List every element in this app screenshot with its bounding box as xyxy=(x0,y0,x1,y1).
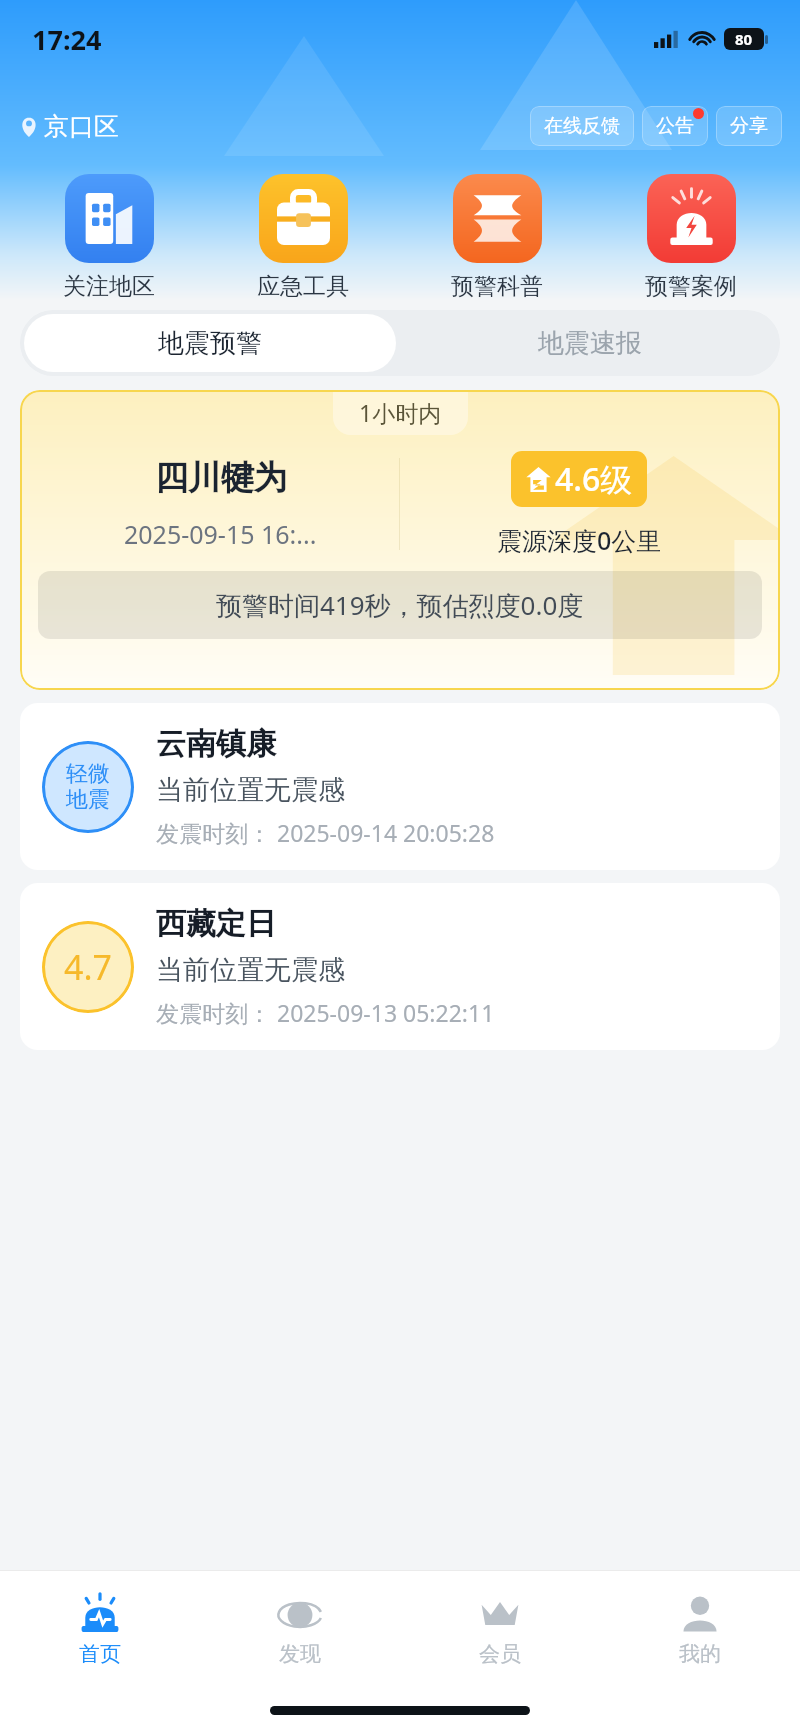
staticText: 应急工具 xyxy=(257,272,349,298)
staticText: 发震时刻： 2025-09-14 20:05:28 xyxy=(156,817,495,848)
staticText: 震源深度0公里 xyxy=(497,523,662,557)
button[interactable]: 在线反馈 xyxy=(530,106,634,146)
button[interactable]: 地震预警 xyxy=(24,314,396,372)
button[interactable]: 1小时内 xyxy=(20,390,780,690)
staticText: 80 xyxy=(735,29,753,49)
staticText: 四川犍为 xyxy=(155,457,287,499)
staticText: 当前位置无震感 xyxy=(156,773,345,807)
button[interactable]: 轻微 地震 xyxy=(20,703,780,870)
staticText: 会员 xyxy=(479,1641,521,1667)
button[interactable]: 发现 xyxy=(200,1571,400,1687)
staticText: 云南镇康 xyxy=(156,725,276,763)
button[interactable]: 京口区 xyxy=(18,107,119,146)
staticText: 预警案例 xyxy=(645,272,737,298)
button[interactable]: 公告 xyxy=(642,106,708,146)
staticText: 预警时间419秒，预估烈度0.0度 xyxy=(216,587,584,623)
staticText: 京口区 xyxy=(44,111,119,142)
staticText: 17:24 xyxy=(32,21,102,58)
staticText: 轻微 地震 xyxy=(66,760,110,814)
staticText: 预警科普 xyxy=(451,272,543,298)
button[interactable]: 预警科普 xyxy=(400,172,594,300)
staticText: 公告 xyxy=(656,114,694,138)
staticText: 当前位置无震感 xyxy=(156,953,345,987)
staticText: 1小时内 xyxy=(359,397,442,428)
staticText: 发现 xyxy=(279,1641,321,1667)
staticText: 2025-09-15 16:... xyxy=(124,517,317,551)
staticText: 4.6级 xyxy=(555,457,633,501)
staticText: 地震预警 xyxy=(158,327,262,360)
button[interactable]: 4.7 xyxy=(20,883,780,1050)
staticText: 地震速报 xyxy=(538,327,642,360)
staticText: 关注地区 xyxy=(63,272,155,298)
button[interactable]: 分享 xyxy=(716,106,782,146)
staticText: 分享 xyxy=(730,114,768,138)
button[interactable]: 首页 xyxy=(0,1571,200,1687)
button[interactable]: 地震速报 xyxy=(400,310,780,376)
button[interactable]: 预警案例 xyxy=(594,172,788,300)
staticText: 我的 xyxy=(679,1641,721,1667)
staticText: 西藏定日 xyxy=(156,905,276,943)
button[interactable]: 应急工具 xyxy=(206,172,400,300)
button[interactable]: 关注地区 xyxy=(12,172,206,300)
staticText: 首页 xyxy=(79,1641,121,1667)
button[interactable]: 会员 xyxy=(400,1571,600,1687)
button[interactable]: 我的 xyxy=(600,1571,800,1687)
staticText: 在线反馈 xyxy=(544,114,620,138)
staticText: 发震时刻： 2025-09-13 05:22:11 xyxy=(156,997,495,1028)
staticText: 4.7 xyxy=(64,944,113,990)
